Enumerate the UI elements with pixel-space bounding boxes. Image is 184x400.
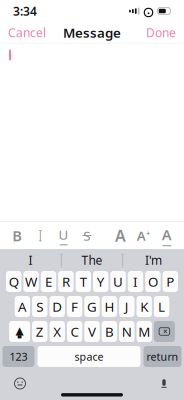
button[interactable]: X [49,321,65,342]
staticText: 123 [9,349,27,364]
staticText: X [53,323,61,340]
button[interactable]: Strikethrough [78,223,96,247]
staticText: H [104,298,114,315]
button[interactable]: 123 [2,346,34,367]
staticText: ▲ [16,325,24,337]
staticText: N [122,323,132,340]
staticText: × [163,326,168,337]
button[interactable]: C [67,321,82,342]
staticText: + [146,229,150,238]
staticText: C [71,323,79,340]
staticText: M [138,323,150,340]
button[interactable]: return [143,346,181,367]
staticText: F [71,298,78,315]
button[interactable]: O [145,271,161,292]
staticText: B [105,323,114,340]
button[interactable]: Shift [9,321,30,342]
button[interactable]: P [163,271,178,292]
staticText: G [87,298,97,315]
button[interactable]: Y [93,271,108,292]
button[interactable]: Increase text size [135,223,153,247]
button[interactable]: M [136,321,152,342]
staticText: B [12,226,22,245]
staticText: U [59,226,69,243]
staticText: S [36,298,43,315]
staticText: L [158,298,165,315]
button[interactable]: Bold [8,223,26,247]
button[interactable]: B [102,321,117,342]
staticText: A [162,225,172,244]
button[interactable]: W [23,271,39,292]
button[interactable]: G [84,296,100,317]
staticText: return [146,349,178,364]
button[interactable]: K [136,296,152,317]
button[interactable]: J [119,296,134,317]
staticText: U [113,273,123,290]
button[interactable]: T [76,271,91,292]
button[interactable]: U [110,271,126,292]
button[interactable]: space [37,346,140,367]
button[interactable]: Done [140,22,182,42]
button[interactable]: Q [6,271,21,292]
staticText: E [45,273,52,290]
button[interactable]: F [67,296,82,317]
staticText: K [140,298,148,315]
button[interactable]: N [119,321,134,342]
button[interactable]: Delete [154,321,175,342]
button[interactable]: Underline [55,223,73,247]
button[interactable]: D [49,296,65,317]
button[interactable]: Text size [111,223,129,247]
staticText: Z [36,323,44,340]
button[interactable]: E [41,271,56,292]
staticText: A [115,225,126,246]
staticText: I'm [145,252,162,268]
staticText: R [62,273,70,290]
staticText: P [166,273,174,290]
staticText: O [148,273,158,290]
staticText: 3:34 [13,3,37,19]
staticText: W [25,273,37,290]
staticText: I [133,273,138,290]
staticText: Cancel [8,24,46,40]
button[interactable]: Cancel [2,22,52,42]
button[interactable]: V [84,321,100,342]
staticText: I [28,252,32,268]
staticText: The [81,252,102,268]
button[interactable]: R [58,271,74,292]
staticText: S [83,227,90,244]
staticText: Message [63,24,121,41]
button[interactable]: Emoji [9,372,31,394]
button[interactable]: Text color [158,223,176,247]
staticText: V [88,323,96,340]
staticText: I [38,226,43,245]
staticText: A [18,298,27,315]
button[interactable]: S [32,296,47,317]
staticText: Done [146,24,176,40]
staticText: J [125,298,129,315]
button[interactable]: L [154,296,169,317]
button[interactable]: The [62,249,122,271]
button[interactable]: Italic [31,223,49,247]
staticText: A [137,227,146,244]
staticText: Q [9,273,19,290]
staticText: T [80,273,87,290]
button[interactable]: Dictate [153,372,175,394]
button[interactable]: Z [32,321,47,342]
button[interactable]: A [15,296,30,317]
button[interactable]: H [102,296,117,317]
button[interactable]: I [0,249,61,271]
staticText: D [52,298,62,315]
button[interactable]: I'm [123,249,184,271]
button[interactable]: I [128,271,143,292]
staticText: Y [97,273,105,290]
staticText: space [74,349,103,364]
